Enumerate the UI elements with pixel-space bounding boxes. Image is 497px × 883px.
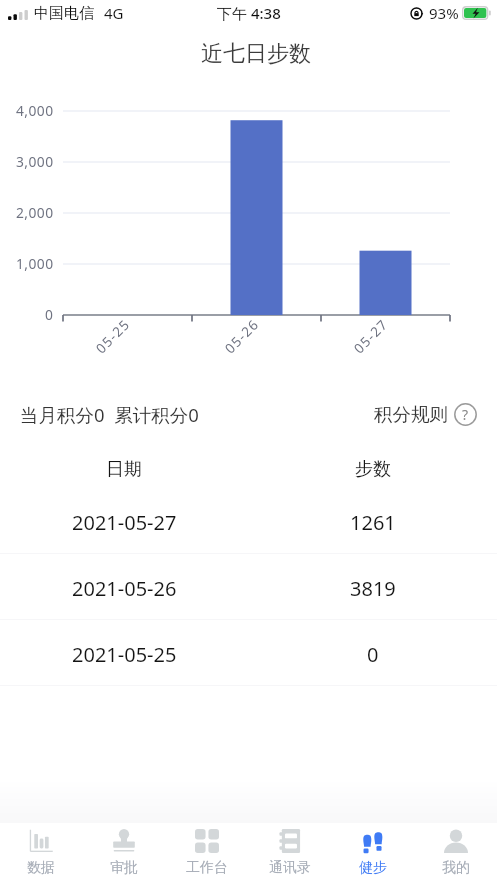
staticText: 1,000 (16, 254, 54, 273)
staticText: 工作台 (186, 859, 228, 877)
button[interactable]: 数据 (0, 823, 82, 883)
button[interactable]: 2021-05-25 (0, 620, 497, 685)
staticText: 05-26 (221, 315, 263, 357)
button[interactable]: 积分规则 (374, 403, 477, 426)
staticText: 数据 (27, 859, 55, 877)
staticText: 2,000 (16, 203, 54, 222)
staticText: 05-25 (92, 315, 134, 357)
staticText: 当月积分0 累计积分0 (20, 402, 199, 427)
button[interactable]: 工作台 (165, 823, 248, 883)
staticText: 通讯录 (269, 859, 311, 877)
button[interactable]: 我的 (414, 823, 497, 883)
staticText: 3819 (350, 575, 396, 602)
staticText: 0 (45, 305, 54, 324)
staticText: 0 (367, 641, 379, 668)
staticText: 日期 (106, 458, 142, 481)
staticText: 3,000 (16, 152, 54, 171)
button[interactable]: 审批 (82, 823, 165, 883)
staticText: 中国电信 (34, 4, 94, 23)
staticText: 2021-05-26 (72, 575, 177, 602)
staticText: 健步 (359, 859, 387, 877)
button[interactable]: 2021-05-27 (0, 488, 497, 553)
staticText: 步数 (355, 458, 391, 481)
staticText: 2021-05-25 (72, 641, 177, 668)
button[interactable]: 健步 (331, 823, 414, 883)
staticText: 近七日步数 (201, 40, 311, 68)
staticText: 93% (429, 3, 459, 23)
staticText: 审批 (110, 859, 138, 877)
staticText: 05-27 (350, 315, 392, 357)
staticText: ? (462, 405, 469, 424)
staticText: 积分规则 (374, 403, 448, 426)
staticText: 下午 4:38 (217, 3, 281, 23)
staticText: 4,000 (16, 101, 54, 120)
staticText: 我的 (442, 859, 470, 877)
staticText: 2021-05-27 (72, 509, 177, 536)
staticText: 1261 (350, 509, 396, 536)
button[interactable]: 2021-05-26 (0, 554, 497, 619)
staticText: 4G (104, 3, 124, 23)
button[interactable]: 通讯录 (248, 823, 331, 883)
